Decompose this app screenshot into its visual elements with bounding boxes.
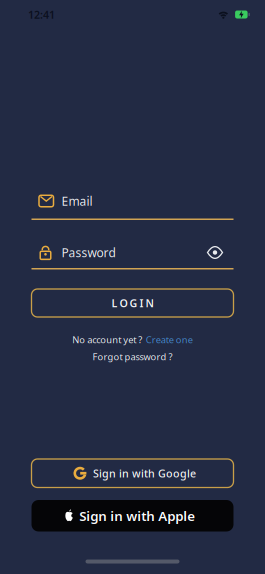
staticText: 12:41 (28, 7, 55, 22)
staticText: Forgot password ? (92, 350, 172, 363)
staticText: Sign in with Google (93, 466, 196, 480)
staticText: Email (61, 193, 92, 209)
button[interactable]: Email (31, 194, 233, 220)
staticText: Create one (146, 333, 193, 346)
staticText: No account yet ? (72, 333, 142, 346)
button[interactable]: Create one (146, 333, 193, 346)
button[interactable]: Sign in with Google (31, 459, 233, 487)
button[interactable] (207, 244, 223, 260)
button[interactable]: Forgot password ? (92, 350, 172, 363)
staticText: L O G I N (111, 296, 153, 310)
staticText: Sign in with Apple (79, 507, 195, 525)
staticText: Password (61, 244, 115, 260)
button[interactable]: Password (31, 244, 233, 269)
button[interactable]: L O G I N (31, 289, 233, 317)
button[interactable]: Sign in with Apple (31, 500, 233, 531)
